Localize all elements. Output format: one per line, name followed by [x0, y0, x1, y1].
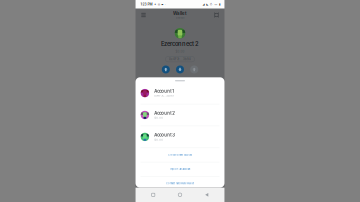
staticText: Wallet: [173, 11, 187, 16]
staticText: 0x4F7c...3b9A: [169, 57, 191, 61]
button[interactable]: Connect hardware wallet: [135, 176, 224, 190]
staticText: ▮: [219, 3, 221, 6]
staticText: ▭: [214, 3, 217, 6]
button[interactable]: Switch network: [210, 8, 222, 21]
staticText: ✦: [154, 3, 156, 6]
staticText: Account 2: [154, 111, 175, 116]
staticText: Ezerconnect 2: [161, 40, 199, 47]
staticText: ▰: [161, 3, 163, 6]
button[interactable]: Home: [171, 188, 189, 202]
button[interactable]: Create a new account: [135, 148, 224, 162]
staticText: Account 3: [154, 132, 175, 138]
staticText: 1:23 PM: [140, 2, 152, 6]
staticText: Create a new account: [168, 153, 192, 156]
staticText: ↻: [210, 3, 213, 6]
staticText: ◢: [203, 3, 205, 6]
staticText: Connect hardware wallet: [166, 182, 194, 185]
button[interactable]: Account 1: [135, 82, 224, 104]
staticText: Import an account: [169, 168, 190, 171]
staticText: ◎: [158, 3, 160, 6]
button[interactable]: Back: [198, 188, 216, 202]
staticText: Ethereum: [175, 16, 184, 19]
button[interactable]: Buy: [190, 65, 198, 73]
button[interactable]: Recent apps: [144, 188, 162, 202]
staticText: ◣: [206, 3, 208, 6]
staticText: 0x4F7c...3b9A: [154, 94, 174, 97]
button[interactable]: Menu: [137, 8, 149, 21]
button[interactable]: Import an account: [135, 162, 224, 176]
button[interactable]: 0x4F7c...3b9A: [165, 56, 195, 62]
button[interactable]: Send: [162, 65, 170, 73]
staticText: Account 1: [154, 89, 174, 94]
button[interactable]: Account 2: [135, 104, 224, 126]
button[interactable]: Account 3: [135, 126, 224, 148]
staticText: ·: [165, 3, 166, 6]
staticText: $0.00: [154, 116, 163, 119]
staticText: $0.00: [154, 138, 163, 141]
button[interactable]: Receive: [176, 65, 184, 73]
